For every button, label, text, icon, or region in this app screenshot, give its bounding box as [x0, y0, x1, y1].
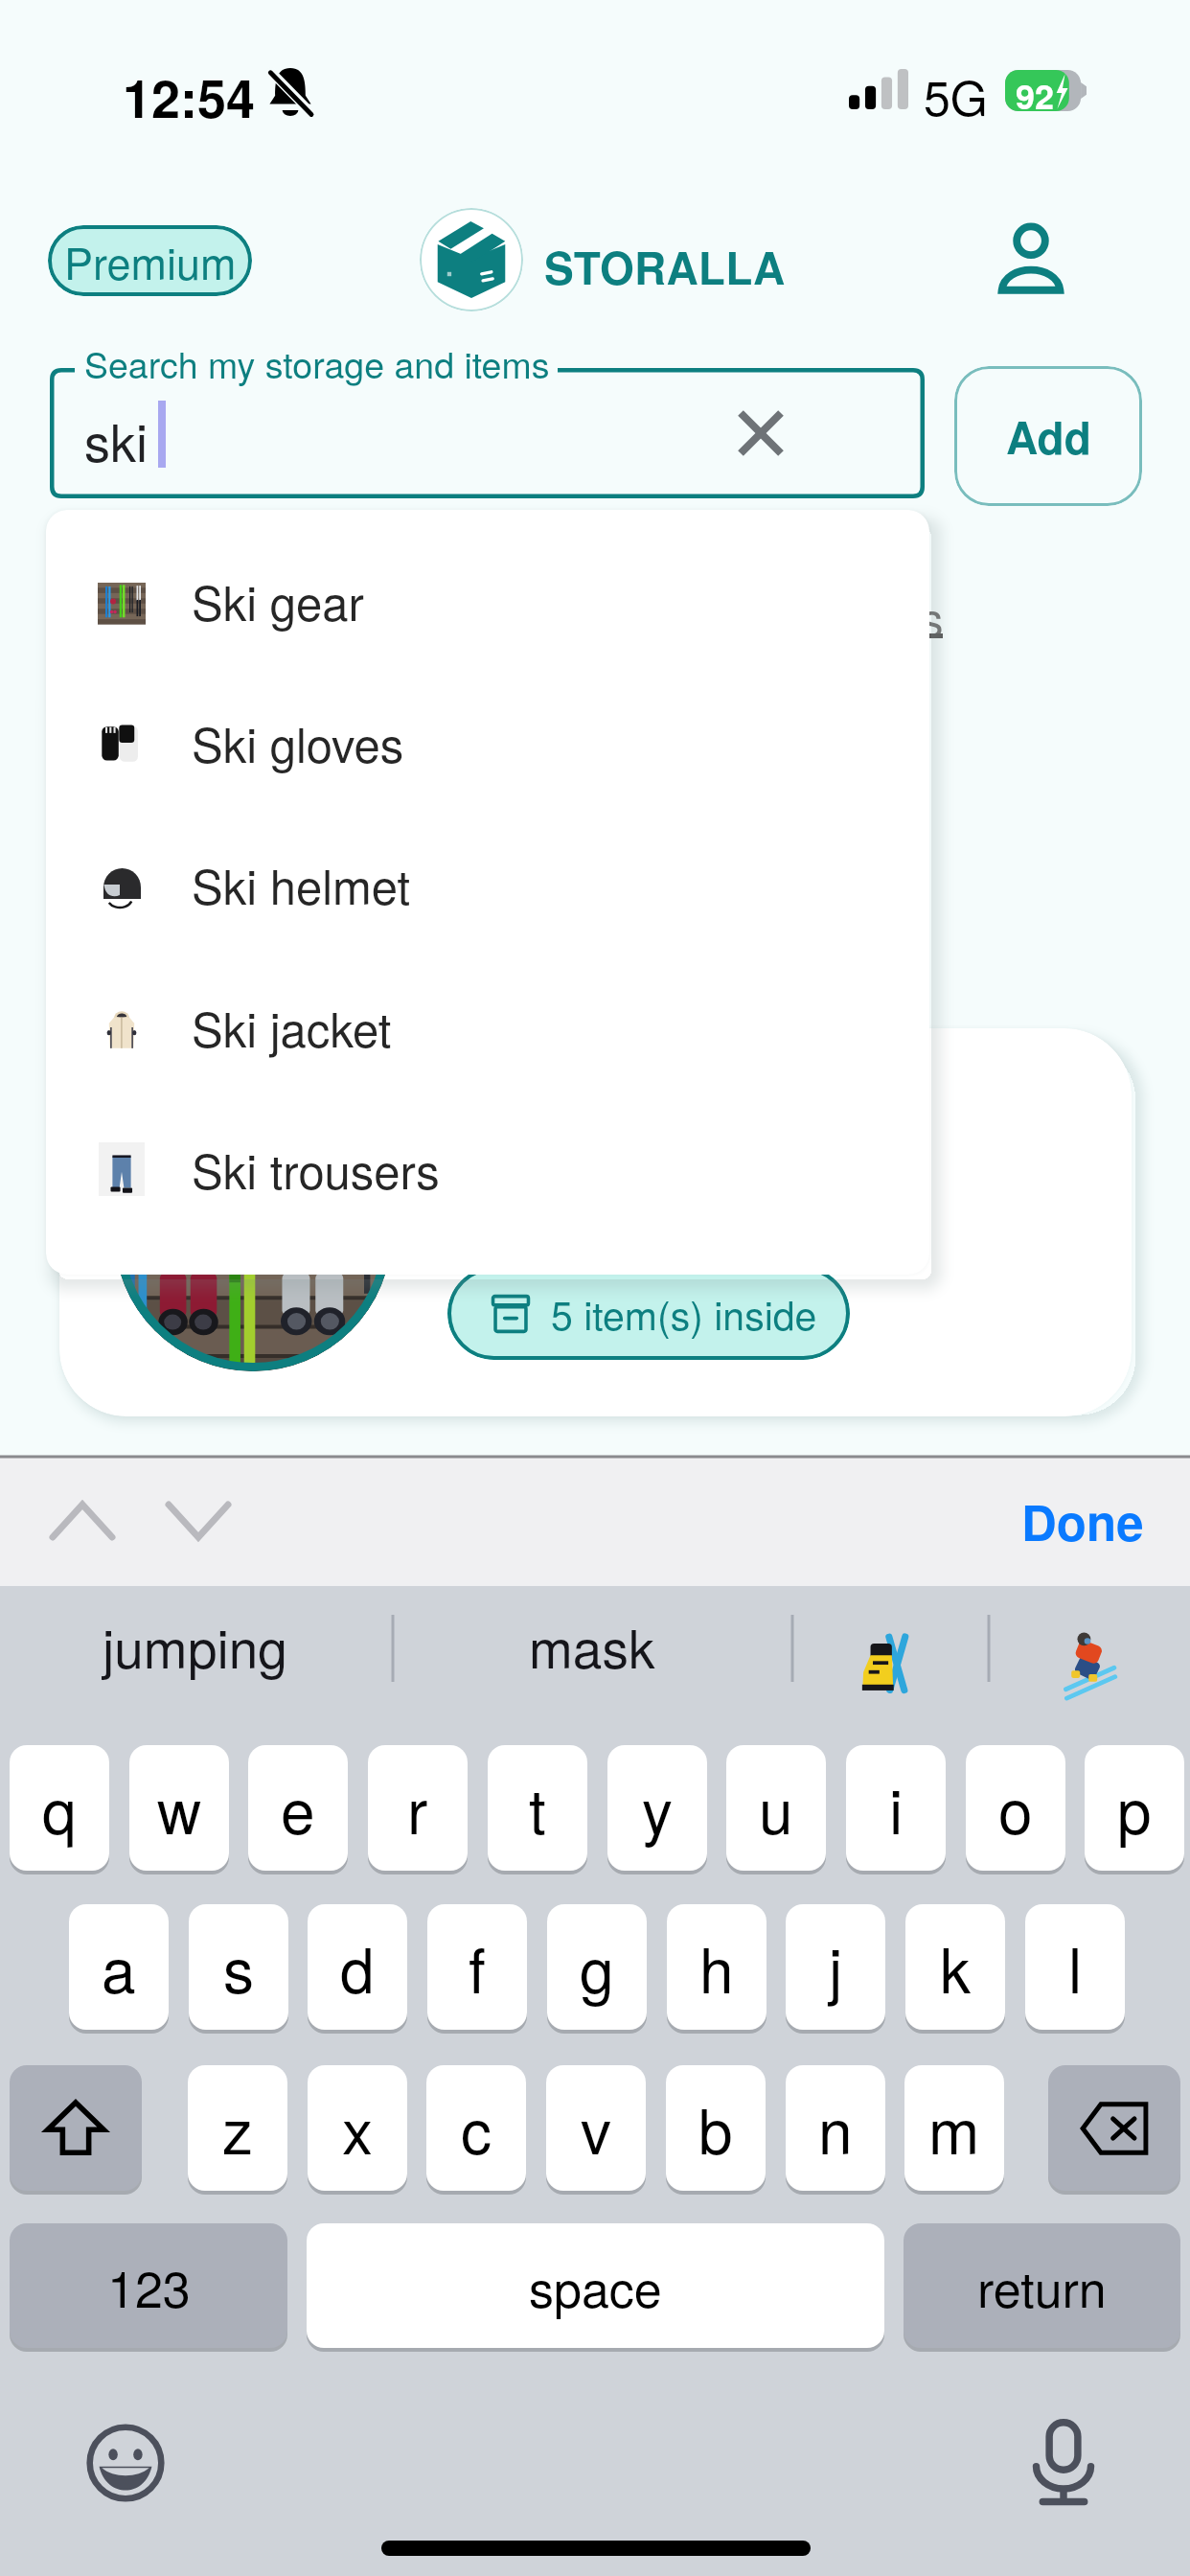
staticText: Premium	[64, 230, 237, 291]
staticText: 5 item(s) inside	[551, 1285, 817, 1342]
button[interactable]: p	[1085, 1745, 1184, 1871]
button[interactable]: space	[307, 2223, 884, 2348]
button[interactable]: x	[308, 2065, 407, 2191]
staticText: d	[340, 1923, 375, 2012]
button[interactable]: c	[426, 2065, 526, 2191]
button[interactable]: r	[368, 1745, 468, 1871]
staticText: s	[223, 1923, 254, 2012]
staticText: t	[529, 1764, 546, 1852]
button[interactable]: m	[904, 2065, 1004, 2191]
button[interactable]: Skier emoji	[1059, 1630, 1116, 1691]
staticText: g	[580, 1923, 614, 2012]
staticText: s	[921, 585, 944, 649]
staticText: Search my storage and items	[84, 337, 550, 389]
button[interactable]: 5 item(s) inside	[447, 1267, 850, 1360]
button[interactable]: Clear search	[722, 395, 799, 471]
staticText: o	[998, 1764, 1033, 1852]
staticText: 5G	[924, 61, 988, 130]
staticText: j	[829, 1923, 843, 2012]
button[interactable]: a	[69, 1904, 169, 2030]
staticText: 92	[1016, 70, 1055, 111]
button[interactable]: l	[1025, 1904, 1125, 2030]
button[interactable]: Premium	[48, 225, 252, 296]
button[interactable]: i	[846, 1745, 946, 1871]
staticText: y	[642, 1764, 673, 1852]
staticText: STORALLA	[544, 235, 786, 298]
button[interactable]: d	[308, 1904, 407, 2030]
button[interactable]: h	[667, 1904, 767, 2030]
staticText: ski	[84, 402, 148, 476]
staticText: Ski gear	[192, 567, 364, 634]
button[interactable]: Ski gear	[46, 532, 929, 670]
staticText: b	[698, 2084, 733, 2173]
button[interactable]: Account	[979, 207, 1083, 310]
button[interactable]: Ski jacket	[46, 958, 929, 1096]
staticText: Ski gloves	[192, 709, 404, 776]
button[interactable]: e	[248, 1745, 348, 1871]
button[interactable]: b	[666, 2065, 766, 2191]
button[interactable]: 5 item(s) inside	[59, 1028, 1132, 1416]
staticText: jumping	[103, 1608, 287, 1684]
button[interactable]: k	[905, 1904, 1005, 2030]
button[interactable]: z	[188, 2065, 287, 2191]
staticText: e	[281, 1764, 315, 1852]
button[interactable]: Ski gloves	[46, 674, 929, 812]
staticText: a	[102, 1923, 136, 2012]
button[interactable]: w	[129, 1745, 229, 1871]
button[interactable]: Previous field	[36, 1475, 128, 1567]
staticText: p	[1117, 1764, 1152, 1852]
button[interactable]: t	[488, 1745, 587, 1871]
staticText: w	[157, 1764, 202, 1852]
button[interactable]: v	[546, 2065, 646, 2191]
button[interactable]: j	[786, 1904, 885, 2030]
button[interactable]: Dictation	[1023, 2415, 1104, 2511]
button[interactable]: q	[10, 1745, 109, 1871]
button[interactable]: Next field	[152, 1475, 244, 1567]
button[interactable]: Ski trousers	[46, 1100, 929, 1238]
button[interactable]: f	[427, 1904, 527, 2030]
staticText: q	[42, 1764, 77, 1852]
staticText: i	[889, 1764, 904, 1852]
staticText: u	[759, 1764, 793, 1852]
button[interactable]: Emoji	[85, 2423, 166, 2503]
button[interactable]: Add	[954, 366, 1142, 506]
staticText: 123	[107, 2250, 191, 2321]
staticText: m	[928, 2084, 980, 2173]
staticText: n	[818, 2084, 853, 2173]
staticText: x	[342, 2084, 373, 2173]
button[interactable]: Shift	[10, 2065, 142, 2191]
button[interactable]: o	[966, 1745, 1065, 1871]
staticText: v	[581, 2084, 611, 2173]
button[interactable]: g	[547, 1904, 647, 2030]
button[interactable]: Ski boot emoji	[860, 1629, 920, 1694]
staticText: l	[1068, 1923, 1083, 2012]
staticText: Done	[1021, 1486, 1144, 1556]
staticText: z	[222, 2084, 253, 2173]
staticText: f	[469, 1923, 486, 2012]
button[interactable]: Done	[1015, 1469, 1151, 1573]
staticText: 12:54	[123, 59, 256, 133]
button[interactable]: jumping	[89, 1586, 300, 1706]
button[interactable]: Ski gear photo	[114, 1093, 392, 1371]
button[interactable]: y	[607, 1745, 707, 1871]
button[interactable]: Ski helmet	[46, 816, 929, 954]
staticText: k	[940, 1923, 971, 2012]
staticText: return	[977, 2250, 1107, 2321]
button[interactable]: n	[786, 2065, 885, 2191]
button[interactable]: Backspace	[1048, 2065, 1180, 2191]
staticText: h	[699, 1923, 734, 2012]
staticText: space	[529, 2250, 662, 2321]
staticText: mask	[529, 1608, 655, 1684]
button[interactable]: mask	[487, 1586, 698, 1706]
staticText: Ski jacket	[192, 994, 392, 1061]
staticText: Add	[1006, 404, 1091, 468]
staticText: Ski trousers	[192, 1136, 440, 1203]
button[interactable]: Return	[904, 2223, 1180, 2348]
staticText: r	[407, 1764, 428, 1852]
staticText: c	[461, 2084, 492, 2173]
button[interactable]: s	[189, 1904, 288, 2030]
button[interactable]: Numbers	[10, 2223, 287, 2348]
staticText: Ski helmet	[192, 851, 411, 918]
button[interactable]: u	[726, 1745, 826, 1871]
